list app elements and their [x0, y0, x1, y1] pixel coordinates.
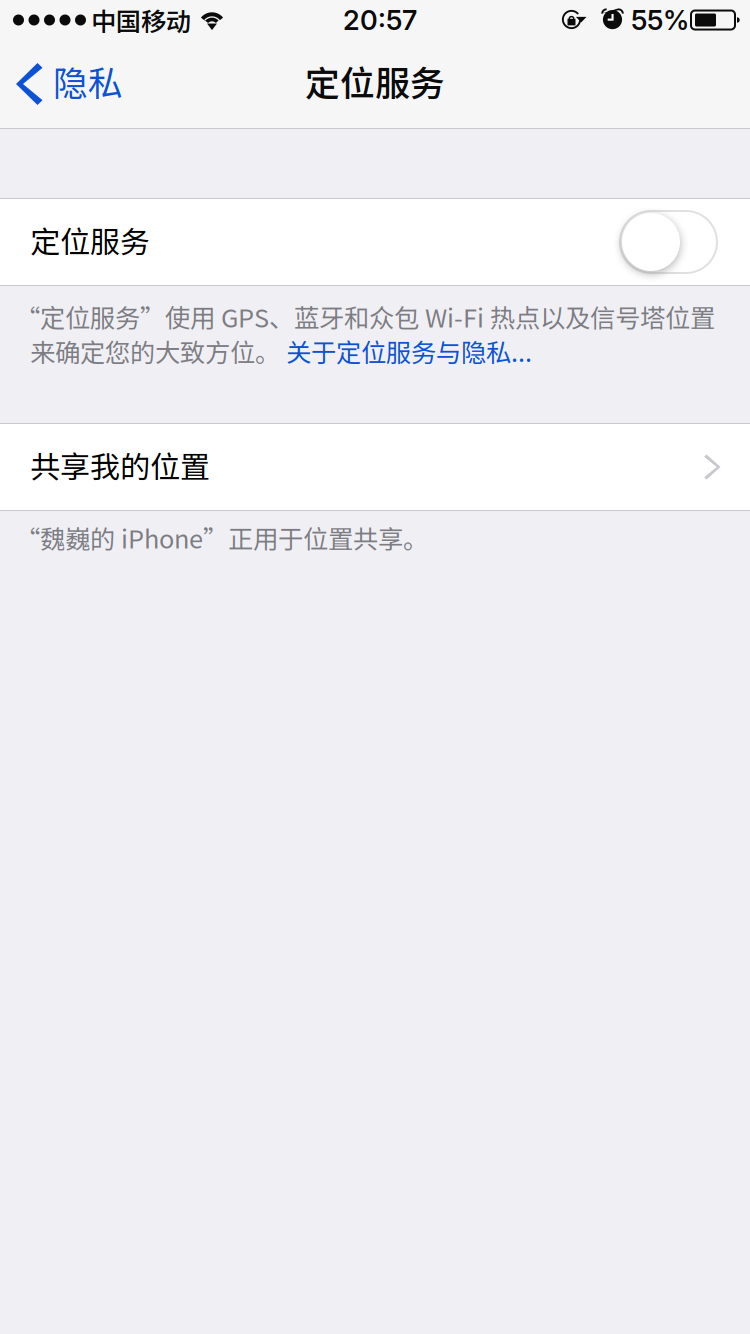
staticText: 关于定位服务与隐私...: [286, 333, 532, 369]
staticText: 定位服务: [305, 56, 445, 106]
staticText: 中国移动: [91, 2, 191, 38]
staticText: 20:57: [343, 3, 417, 37]
button[interactable]: 定位服务: [0, 199, 750, 285]
staticText: 55%: [631, 3, 689, 37]
staticText: 来确定您的大致方位。: [30, 333, 286, 369]
staticText: “魏巍的 iPhone”正用于位置共享。: [15, 519, 428, 556]
staticText: “定位服务”使用 GPS、蓝牙和众包 Wi-Fi 热点以及信号塔位置: [15, 298, 715, 335]
button[interactable]: 共享我的位置: [0, 424, 750, 510]
staticText: 隐私: [53, 56, 123, 106]
button[interactable]: 关于定位服务与隐私...: [286, 333, 532, 369]
button[interactable]: 隐私: [0, 40, 140, 128]
staticText: 共享我的位置: [30, 443, 210, 487]
staticText: 定位服务: [30, 218, 150, 262]
